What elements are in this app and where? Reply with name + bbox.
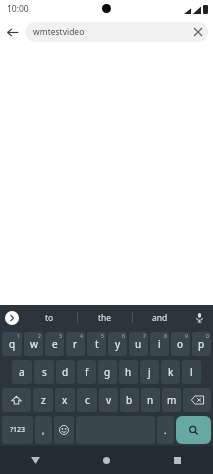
staticText: q bbox=[9, 337, 16, 351]
button[interactable]: Clear query bbox=[188, 22, 208, 42]
button[interactable]: More suggestions bbox=[5, 311, 19, 325]
button[interactable]: c bbox=[77, 388, 97, 412]
staticText: y bbox=[115, 337, 121, 351]
staticText: o bbox=[177, 337, 184, 351]
button[interactable]: Search bbox=[176, 416, 211, 444]
button[interactable]: w bbox=[24, 332, 43, 356]
button[interactable]: i bbox=[150, 332, 169, 356]
staticText: a bbox=[19, 365, 25, 379]
button[interactable]: s bbox=[34, 360, 54, 384]
staticText: p bbox=[198, 337, 205, 351]
staticText: wmtestvideo bbox=[33, 26, 188, 38]
staticText: x bbox=[62, 393, 68, 407]
button[interactable]: a bbox=[12, 360, 32, 384]
staticText: z bbox=[41, 393, 46, 407]
staticText: r bbox=[73, 337, 78, 351]
staticText: 9 bbox=[185, 333, 188, 340]
staticText: 5 bbox=[101, 333, 104, 340]
button[interactable]: g bbox=[98, 360, 117, 384]
staticText: k bbox=[168, 365, 174, 379]
button[interactable]: m bbox=[162, 388, 181, 412]
button[interactable]: , bbox=[35, 416, 52, 444]
staticText: 8 bbox=[164, 333, 167, 340]
staticText: and bbox=[152, 312, 168, 324]
button[interactable]: Back bbox=[0, 18, 25, 46]
staticText: d bbox=[62, 365, 69, 379]
button[interactable]: Home bbox=[71, 446, 142, 474]
button[interactable]: v bbox=[99, 388, 118, 412]
button[interactable]: z bbox=[33, 388, 53, 412]
staticText: 4 bbox=[80, 333, 83, 340]
staticText: t bbox=[95, 337, 99, 351]
button[interactable]: e bbox=[45, 332, 64, 356]
button[interactable]: d bbox=[56, 360, 75, 384]
button[interactable]: t bbox=[87, 332, 106, 356]
staticText: w bbox=[30, 337, 38, 351]
button[interactable]: y bbox=[108, 332, 127, 356]
button[interactable]: Voice input bbox=[187, 305, 211, 330]
button[interactable]: to bbox=[22, 305, 77, 330]
staticText: i bbox=[158, 337, 161, 351]
staticText: ?123 bbox=[10, 425, 26, 435]
button[interactable]: . bbox=[157, 416, 174, 444]
button[interactable]: f bbox=[77, 360, 96, 384]
staticText: h bbox=[125, 365, 132, 379]
button[interactable]: l bbox=[182, 360, 201, 384]
staticText: l bbox=[190, 365, 193, 379]
button[interactable]: b bbox=[120, 388, 139, 412]
staticText: u bbox=[135, 337, 142, 351]
button[interactable]: Emoji bbox=[54, 416, 74, 444]
staticText: c bbox=[85, 393, 90, 407]
button[interactable]: the bbox=[78, 305, 132, 330]
button[interactable]: u bbox=[129, 332, 148, 356]
button[interactable]: p bbox=[192, 332, 211, 356]
button[interactable]: Shift bbox=[2, 388, 31, 412]
button[interactable]: h bbox=[119, 360, 138, 384]
button[interactable]: n bbox=[141, 388, 160, 412]
button[interactable]: Back bbox=[0, 446, 71, 474]
staticText: b bbox=[126, 393, 133, 407]
staticText: to bbox=[45, 312, 54, 324]
button[interactable]: wmtestvideo bbox=[25, 22, 208, 42]
button[interactable]: k bbox=[161, 360, 180, 384]
button[interactable]: q bbox=[2, 332, 22, 356]
staticText: 6 bbox=[122, 333, 125, 340]
staticText: f bbox=[85, 365, 89, 379]
staticText: v bbox=[106, 393, 112, 407]
button[interactable]: j bbox=[140, 360, 159, 384]
button[interactable]: Recents bbox=[142, 446, 213, 474]
button[interactable]: r bbox=[66, 332, 85, 356]
staticText: 2 bbox=[38, 333, 41, 340]
button[interactable]: x bbox=[55, 388, 75, 412]
staticText: 7 bbox=[143, 333, 146, 340]
staticText: , bbox=[42, 424, 45, 436]
button[interactable]: ?123 bbox=[2, 416, 33, 444]
staticText: e bbox=[52, 337, 58, 351]
staticText: m bbox=[167, 393, 177, 407]
staticText: s bbox=[42, 365, 47, 379]
staticText: the bbox=[98, 312, 112, 324]
staticText: g bbox=[104, 365, 111, 379]
staticText: . bbox=[164, 424, 167, 436]
button[interactable]: o bbox=[171, 332, 190, 356]
staticText: 10:00 bbox=[7, 3, 29, 15]
staticText: n bbox=[147, 393, 154, 407]
staticText: 0 bbox=[206, 333, 209, 340]
button[interactable]: and bbox=[133, 305, 187, 330]
staticText: j bbox=[148, 365, 151, 379]
staticText: 3 bbox=[59, 333, 62, 340]
staticText: 1 bbox=[17, 333, 20, 340]
button[interactable]: Backspace bbox=[183, 388, 211, 412]
